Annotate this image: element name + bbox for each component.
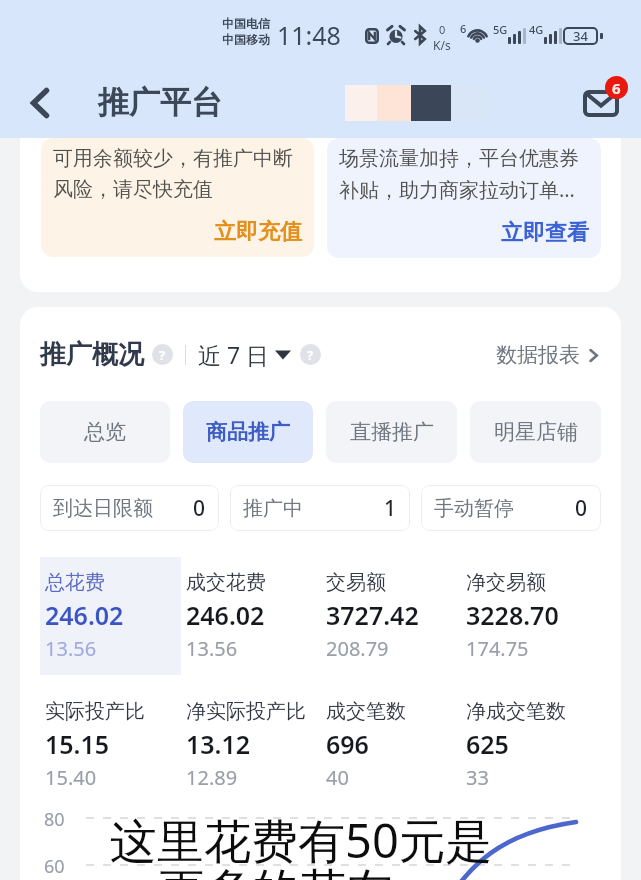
- button[interactable]: 总览: [40, 401, 170, 463]
- button[interactable]: 手动暂停: [421, 485, 601, 531]
- staticText: 13.12: [186, 727, 251, 761]
- staticText: 近 7 日: [198, 339, 270, 370]
- staticText: 净交易额: [466, 570, 546, 595]
- staticText: 34: [573, 27, 588, 45]
- staticText: 中国移动: [222, 32, 270, 47]
- staticText: 5G: [493, 22, 508, 37]
- staticText: 696: [326, 727, 369, 761]
- button[interactable]: 场景流量加持，平台优惠券补贴，助力商家拉动订单…: [327, 138, 601, 258]
- staticText: 这里花费有50元是: [110, 808, 493, 872]
- button[interactable]: Help: [300, 344, 321, 365]
- staticText: 总览: [84, 419, 126, 445]
- staticText: 15.40: [45, 764, 97, 791]
- button[interactable]: 成交笔数: [321, 686, 461, 804]
- staticText: 60: [44, 854, 65, 879]
- staticText: 33: [466, 764, 489, 791]
- button[interactable]: 可用余额较少，有推广中断风险，请尽快充值: [41, 138, 314, 257]
- staticText: 80: [44, 807, 65, 832]
- staticText: 场景流量加持，平台优惠券补贴，助力商家拉动订单…: [339, 146, 589, 203]
- staticText: 11:48: [277, 18, 341, 52]
- staticText: 6: [460, 21, 467, 36]
- staticText: 更多的花在: [158, 862, 393, 880]
- button[interactable]: 成交花费: [181, 557, 321, 675]
- staticText: 15.15: [45, 727, 110, 761]
- staticText: 交易额: [326, 570, 386, 595]
- staticText: 净成交笔数: [466, 699, 566, 724]
- staticText: 208.79: [326, 635, 389, 662]
- button[interactable]: 总花费: [40, 557, 181, 675]
- button[interactable]: 净交易额: [461, 557, 601, 675]
- staticText: 0: [575, 494, 588, 523]
- button[interactable]: 数据报表: [496, 342, 601, 368]
- button[interactable]: Messages: [575, 77, 627, 129]
- staticText: 246.02: [186, 598, 265, 632]
- staticText: 40: [326, 764, 349, 791]
- staticText: 6: [612, 78, 621, 98]
- staticText: 246.02: [45, 598, 124, 632]
- staticText: 直播推广: [350, 419, 434, 445]
- staticText: 推广中: [243, 496, 303, 521]
- button[interactable]: 到达日限额: [40, 485, 219, 531]
- button[interactable]: 明星店铺: [470, 401, 601, 463]
- staticText: 推广平台: [98, 83, 222, 122]
- staticText: 立即充值: [53, 218, 302, 246]
- staticText: 实际投产比: [45, 699, 145, 724]
- staticText: ?: [159, 346, 166, 364]
- button[interactable]: 推广中: [230, 485, 410, 531]
- button[interactable]: 净成交笔数: [461, 686, 601, 804]
- staticText: 12.89: [186, 764, 238, 791]
- staticText: 总花费: [45, 570, 105, 595]
- staticText: 可用余额较少，有推广中断风险，请尽快充值: [53, 146, 302, 202]
- staticText: 到达日限额: [53, 496, 153, 521]
- button[interactable]: 商品推广: [183, 401, 313, 463]
- staticText: 净实际投产比: [186, 699, 306, 724]
- staticText: 推广概况: [40, 338, 144, 371]
- staticText: 3727.42: [326, 598, 419, 632]
- button[interactable]: Back: [14, 77, 66, 129]
- staticText: 成交花费: [186, 570, 266, 595]
- staticText: K/s: [433, 37, 451, 53]
- staticText: 0: [439, 22, 446, 37]
- staticText: 174.75: [466, 635, 529, 662]
- button[interactable]: Help: [152, 344, 173, 365]
- staticText: 13.56: [45, 635, 97, 662]
- staticText: 13.56: [186, 635, 238, 662]
- staticText: 3228.70: [466, 598, 559, 632]
- staticText: 1: [384, 494, 397, 523]
- staticText: 中国电信: [222, 16, 270, 31]
- staticText: 明星店铺: [494, 419, 578, 445]
- staticText: 成交笔数: [326, 699, 406, 724]
- button[interactable]: 直播推广: [326, 401, 457, 463]
- staticText: 手动暂停: [434, 496, 514, 521]
- staticText: ?: [307, 346, 314, 364]
- button[interactable]: 净实际投产比: [181, 686, 321, 804]
- staticText: 立即查看: [339, 219, 589, 247]
- staticText: 数据报表: [496, 342, 580, 368]
- button[interactable]: 近 7 日: [198, 339, 291, 370]
- staticText: 0: [193, 494, 206, 523]
- button[interactable]: 交易额: [321, 557, 461, 675]
- button[interactable]: 实际投产比: [40, 686, 181, 804]
- staticText: 4G: [529, 22, 544, 37]
- staticText: 商品推广: [206, 419, 290, 445]
- staticText: 625: [466, 727, 509, 761]
